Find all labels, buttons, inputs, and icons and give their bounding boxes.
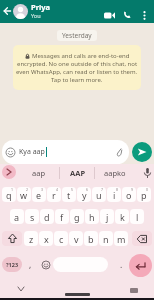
staticText: m (117, 233, 126, 245)
button[interactable]: j (100, 209, 114, 224)
staticText: u (96, 189, 102, 201)
button[interactable]: f (55, 209, 69, 224)
button[interactable] (121, 9, 133, 21)
button[interactable]: aap (18, 164, 59, 181)
staticText: o (126, 189, 132, 201)
button[interactable]: b (84, 231, 98, 246)
button[interactable] (1, 5, 13, 17)
button[interactable]: d (40, 209, 54, 224)
button[interactable]: n (99, 231, 113, 246)
staticText: 7 (101, 187, 104, 192)
button[interactable]: Yesterday (57, 30, 97, 41)
staticText: 9 (131, 187, 134, 192)
button[interactable] (53, 257, 108, 272)
button[interactable] (13, 4, 28, 19)
button[interactable]: i (107, 187, 121, 202)
button[interactable]: w (17, 187, 31, 202)
staticText: i (113, 189, 116, 201)
staticText: Yesterday (62, 31, 92, 40)
button[interactable] (103, 9, 116, 22)
button[interactable]: g (70, 209, 84, 224)
staticText: 6 (86, 187, 89, 192)
staticText: t (67, 189, 71, 201)
button[interactable]: x (39, 231, 53, 246)
button[interactable] (2, 165, 16, 179)
button[interactable]: Priya (31, 2, 51, 19)
button[interactable]: q (2, 187, 16, 202)
button[interactable]: s (25, 209, 39, 224)
staticText: 5 (71, 187, 74, 192)
staticText: 3 (41, 187, 44, 192)
button[interactable]: m (114, 231, 128, 246)
staticText: Priya (31, 2, 51, 12)
staticText: , (29, 259, 32, 271)
staticText: Messages and calls are end-to-end (32, 52, 130, 60)
staticText: l (136, 211, 139, 223)
staticText: w (20, 189, 28, 201)
staticText: q (6, 189, 12, 201)
staticText: z (29, 233, 34, 245)
staticText: h (89, 211, 95, 223)
staticText: x (44, 233, 49, 245)
button[interactable]: h (85, 209, 99, 224)
button[interactable] (65, 293, 90, 296)
button[interactable]: t (62, 187, 76, 202)
button[interactable]: e (32, 187, 46, 202)
button[interactable]: r (47, 187, 61, 202)
button[interactable]: . (115, 257, 127, 272)
button[interactable]: c (54, 231, 68, 246)
staticText: aapko (104, 168, 126, 178)
staticText: k (120, 211, 125, 223)
staticText: s (30, 211, 35, 223)
staticText: f (60, 211, 64, 223)
staticText: y (82, 189, 87, 201)
button[interactable]: , (24, 257, 36, 272)
staticText: aap (32, 168, 46, 178)
staticText: 0 (146, 187, 149, 192)
staticText: even WhatsApp, can read or listen to the… (16, 68, 138, 76)
staticText: . (120, 259, 123, 271)
staticText: encrypted. No one outside of this chat, … (17, 60, 138, 68)
button[interactable] (2, 231, 22, 246)
staticText: ?123 (6, 261, 19, 268)
staticText: Kya aap (19, 147, 45, 157)
button[interactable]: k (115, 209, 129, 224)
staticText: j (106, 211, 109, 223)
button[interactable] (138, 9, 150, 21)
staticText: a (14, 211, 20, 223)
staticText: 2 (26, 187, 29, 192)
staticText: n (103, 233, 109, 245)
button[interactable]: a (10, 209, 24, 224)
staticText: g (74, 211, 80, 223)
staticText: p (141, 189, 147, 201)
button[interactable] (140, 166, 154, 180)
staticText: r (52, 189, 56, 201)
staticText: c (59, 233, 64, 245)
staticText: AAP (70, 168, 86, 178)
staticText: 8 (116, 187, 119, 192)
button[interactable]: u (92, 187, 106, 202)
staticText: d (44, 211, 50, 223)
staticText: 4 (56, 187, 59, 192)
staticText: Tap to learn more. (51, 76, 103, 84)
button[interactable]: y (77, 187, 91, 202)
button[interactable]: o (122, 187, 136, 202)
button[interactable]: Kya aap (2, 140, 129, 164)
button[interactable]: ?123 (2, 257, 22, 272)
staticText: You (31, 12, 41, 19)
button[interactable] (132, 231, 152, 246)
button[interactable]: l (130, 209, 144, 224)
button[interactable]: p (137, 187, 151, 202)
staticText: v (74, 233, 79, 245)
staticText: 1 (11, 187, 14, 192)
button[interactable]: AAP (60, 164, 96, 181)
button[interactable]: aapko (95, 164, 135, 181)
button[interactable]: z (24, 231, 38, 246)
button[interactable] (132, 142, 152, 162)
button[interactable] (129, 254, 152, 277)
staticText: e (36, 189, 42, 201)
staticText: b (88, 233, 94, 245)
button[interactable]: Messages and calls are end-to-end (13, 45, 141, 90)
button[interactable] (39, 257, 52, 272)
button[interactable]: v (69, 231, 83, 246)
